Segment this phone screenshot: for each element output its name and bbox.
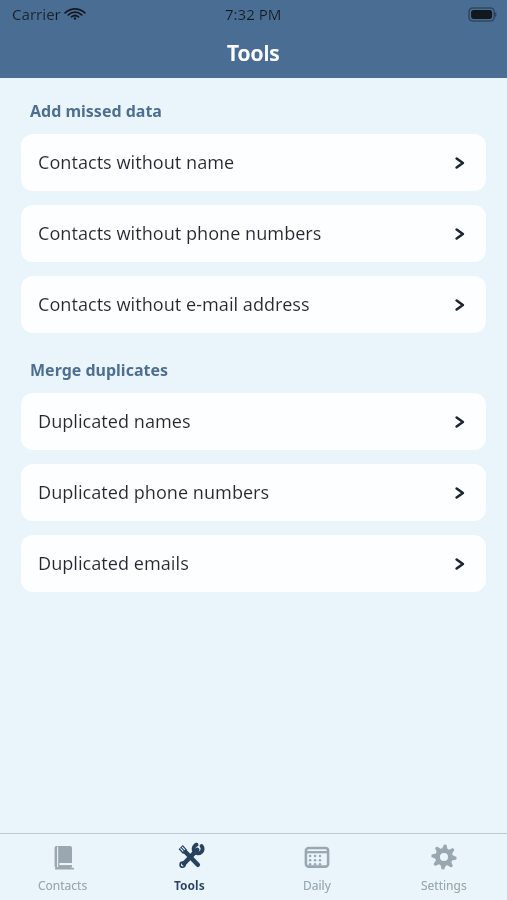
staticText: Merge duplicates [30,359,169,381]
staticText: 7:32 PM [225,4,282,24]
button[interactable]: Settings [380,834,507,900]
staticText: Duplicated phone numbers [38,480,270,505]
button[interactable]: Contacts without phone numbers [21,205,486,262]
other: Contacts [48,842,78,872]
button[interactable]: Duplicated phone numbers [21,464,486,521]
staticText: Contacts without e-mail address [38,292,310,317]
staticText: Tools [227,39,280,68]
button[interactable]: Duplicated emails [21,535,486,592]
button[interactable]: Contacts without name [21,134,486,191]
button[interactable]: Duplicated names [21,393,486,450]
staticText: Daily [303,877,331,893]
staticText: Settings [421,877,467,893]
other: Daily [302,842,332,872]
staticText: Contacts [38,877,88,893]
staticText: Contacts without phone numbers [38,221,322,246]
staticText: Add missed data [30,100,162,122]
staticText: Carrier [12,4,61,24]
staticText: Contacts without name [38,150,235,175]
other: Settings [429,842,459,872]
staticText: Duplicated names [38,409,191,434]
other: Tools [175,842,205,872]
button[interactable]: Daily [253,834,380,900]
staticText: Tools [174,877,205,893]
button[interactable]: Contacts without e-mail address [21,276,486,333]
button[interactable]: Tools [126,834,253,900]
button[interactable]: Contacts [0,834,126,900]
staticText: Duplicated emails [38,551,189,576]
